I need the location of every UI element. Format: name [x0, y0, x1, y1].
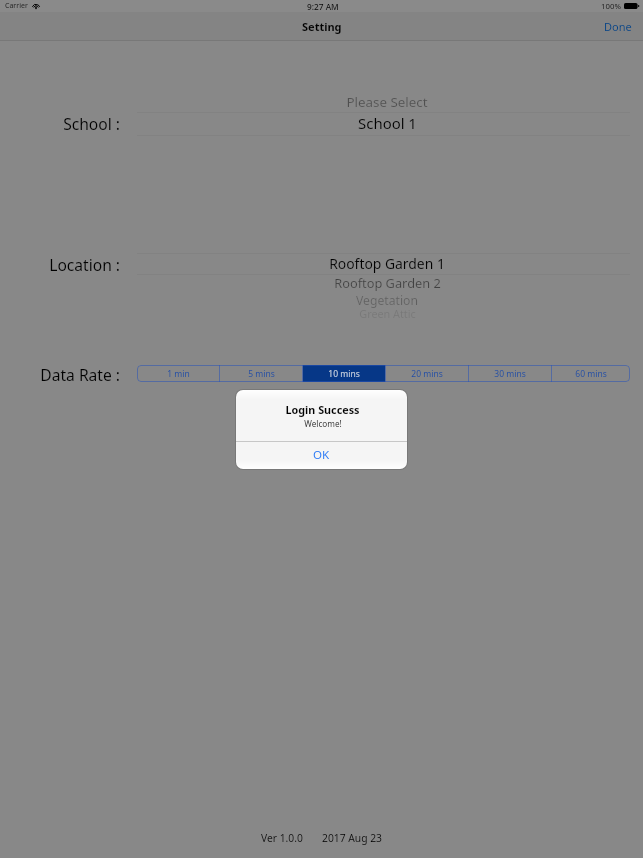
- button[interactable]: OK: [236, 442, 407, 469]
- staticText: 9:27 AM: [307, 1, 339, 12]
- button[interactable]: Done: [593, 12, 643, 40]
- other: Battery full: [624, 3, 640, 9]
- button[interactable]: [137, 112, 630, 135]
- staticText: Location :: [49, 254, 120, 275]
- staticText: 100%: [601, 1, 621, 12]
- button[interactable]: 60 mins: [552, 365, 630, 382]
- staticText: 10 mins: [328, 368, 360, 380]
- button[interactable]: [137, 253, 630, 274]
- staticText: Ver 1.0.0: [261, 831, 303, 845]
- staticText: School :: [63, 113, 120, 134]
- staticText: 5 mins: [248, 368, 275, 380]
- staticText: 30 mins: [494, 368, 526, 380]
- staticText: Login Success: [285, 402, 360, 417]
- staticText: 60 mins: [575, 368, 607, 380]
- staticText: OK: [313, 447, 330, 463]
- staticText: 20 mins: [411, 368, 443, 380]
- button[interactable]: 30 mins: [469, 365, 551, 382]
- staticText: Carrier: [5, 1, 28, 11]
- staticText: Rooftop Garden 2: [334, 274, 441, 291]
- staticText: Vegetation: [356, 292, 418, 309]
- button[interactable]: 5 mins: [220, 365, 302, 382]
- other: Wi-Fi signal: [32, 4, 40, 9]
- button[interactable]: 10 mins: [303, 365, 385, 382]
- staticText: 1 min: [167, 368, 190, 380]
- staticText: School 1: [358, 113, 417, 133]
- staticText: Green Attic: [359, 306, 416, 321]
- staticText: Rooftop Garden 1: [329, 254, 445, 273]
- button[interactable]: 1 min: [137, 365, 219, 382]
- staticText: Please Select: [346, 93, 428, 111]
- staticText: 2017 Aug 23: [322, 831, 382, 845]
- staticText: Setting: [302, 19, 342, 34]
- staticText: Done: [604, 19, 632, 34]
- staticText: Data Rate :: [40, 364, 120, 385]
- staticText: Welcome!: [304, 418, 342, 429]
- button[interactable]: 20 mins: [386, 365, 468, 382]
